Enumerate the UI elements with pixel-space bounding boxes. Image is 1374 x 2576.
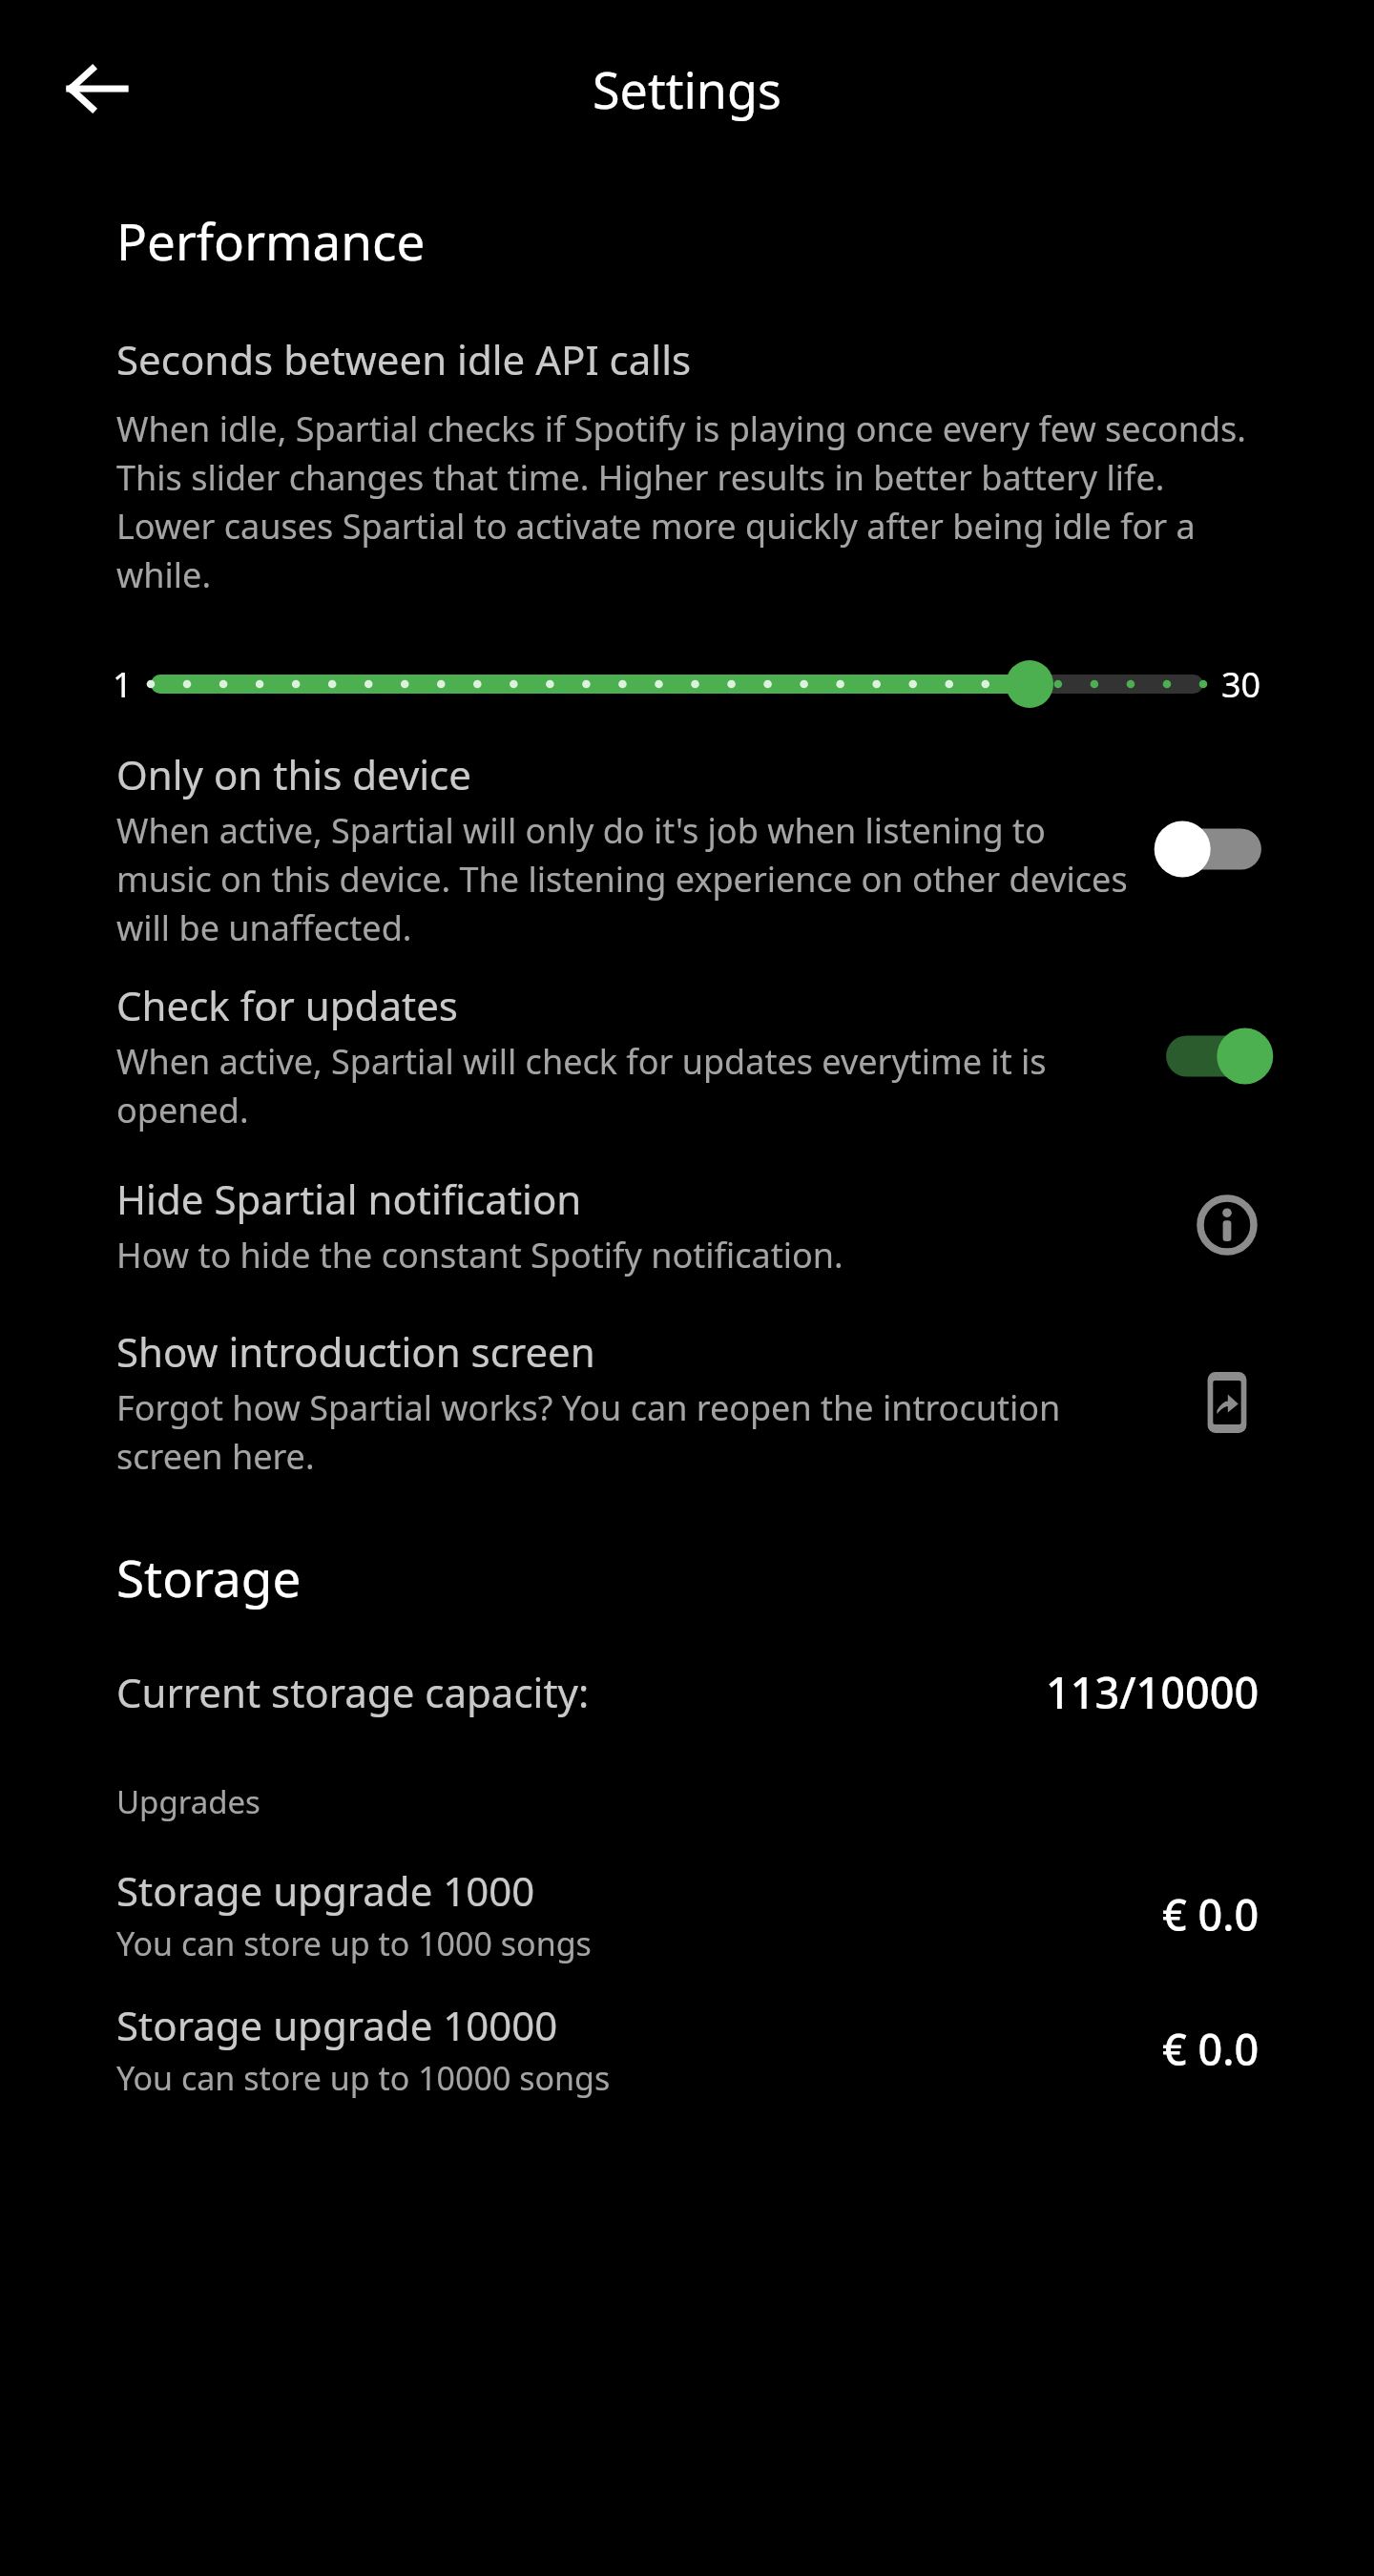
staticText: Show introduction screen <box>116 1324 595 1379</box>
staticText: Check for updates <box>116 978 458 1032</box>
staticText: Settings <box>593 55 781 123</box>
staticText: € 0.0 <box>1162 2020 1259 2078</box>
button[interactable]: Only on this device <box>0 739 1374 959</box>
button[interactable]: Current storage capacity: <box>0 1663 1374 1721</box>
button[interactable]: Storage upgrade 1000 <box>0 1863 1374 1965</box>
button[interactable]: More information <box>1179 1177 1275 1273</box>
staticText: Storage <box>116 1543 302 1611</box>
button[interactable]: Show introduction screen <box>0 1319 1374 1485</box>
button[interactable]: On <box>1153 1022 1275 1091</box>
staticText: 113/10000 <box>1046 1663 1259 1721</box>
staticText: When active, Spartial will check for upd… <box>116 1038 1128 1133</box>
button[interactable]: Back <box>48 39 147 138</box>
staticText: € 0.0 <box>1162 1885 1259 1943</box>
button[interactable]: Storage upgrade 10000 <box>0 1998 1374 2100</box>
staticText: Seconds between idle API calls <box>116 332 692 386</box>
staticText: Forgot how Spartial works? You can reope… <box>116 1384 1155 1480</box>
staticText: You can store up to 10000 songs <box>116 2056 611 2100</box>
staticText: You can store up to 1000 songs <box>116 1922 592 1965</box>
button[interactable] <box>146 646 1208 722</box>
staticText: Only on this device <box>116 747 471 801</box>
staticText: When idle, Spartial checks if Spotify is… <box>116 405 1269 598</box>
button[interactable]: Open screen <box>1179 1355 1275 1450</box>
staticText: Upgrades <box>116 1780 260 1823</box>
staticText: Hide Spartial notification <box>116 1172 582 1226</box>
button[interactable]: Off <box>1153 815 1275 883</box>
staticText: When active, Spartial will only do it's … <box>116 807 1128 951</box>
button[interactable]: Hide Spartial notification <box>0 1166 1374 1284</box>
staticText: How to hide the constant Spotify notific… <box>116 1232 843 1278</box>
staticText: Storage upgrade 1000 <box>116 1863 535 1918</box>
button[interactable]: Check for updates <box>0 970 1374 1141</box>
staticText: 1 <box>113 661 133 708</box>
staticText: Current storage capacity: <box>116 1665 1046 1719</box>
staticText: Storage upgrade 10000 <box>116 1998 558 2052</box>
staticText: Performance <box>116 206 426 275</box>
staticText: 30 <box>1221 661 1261 708</box>
